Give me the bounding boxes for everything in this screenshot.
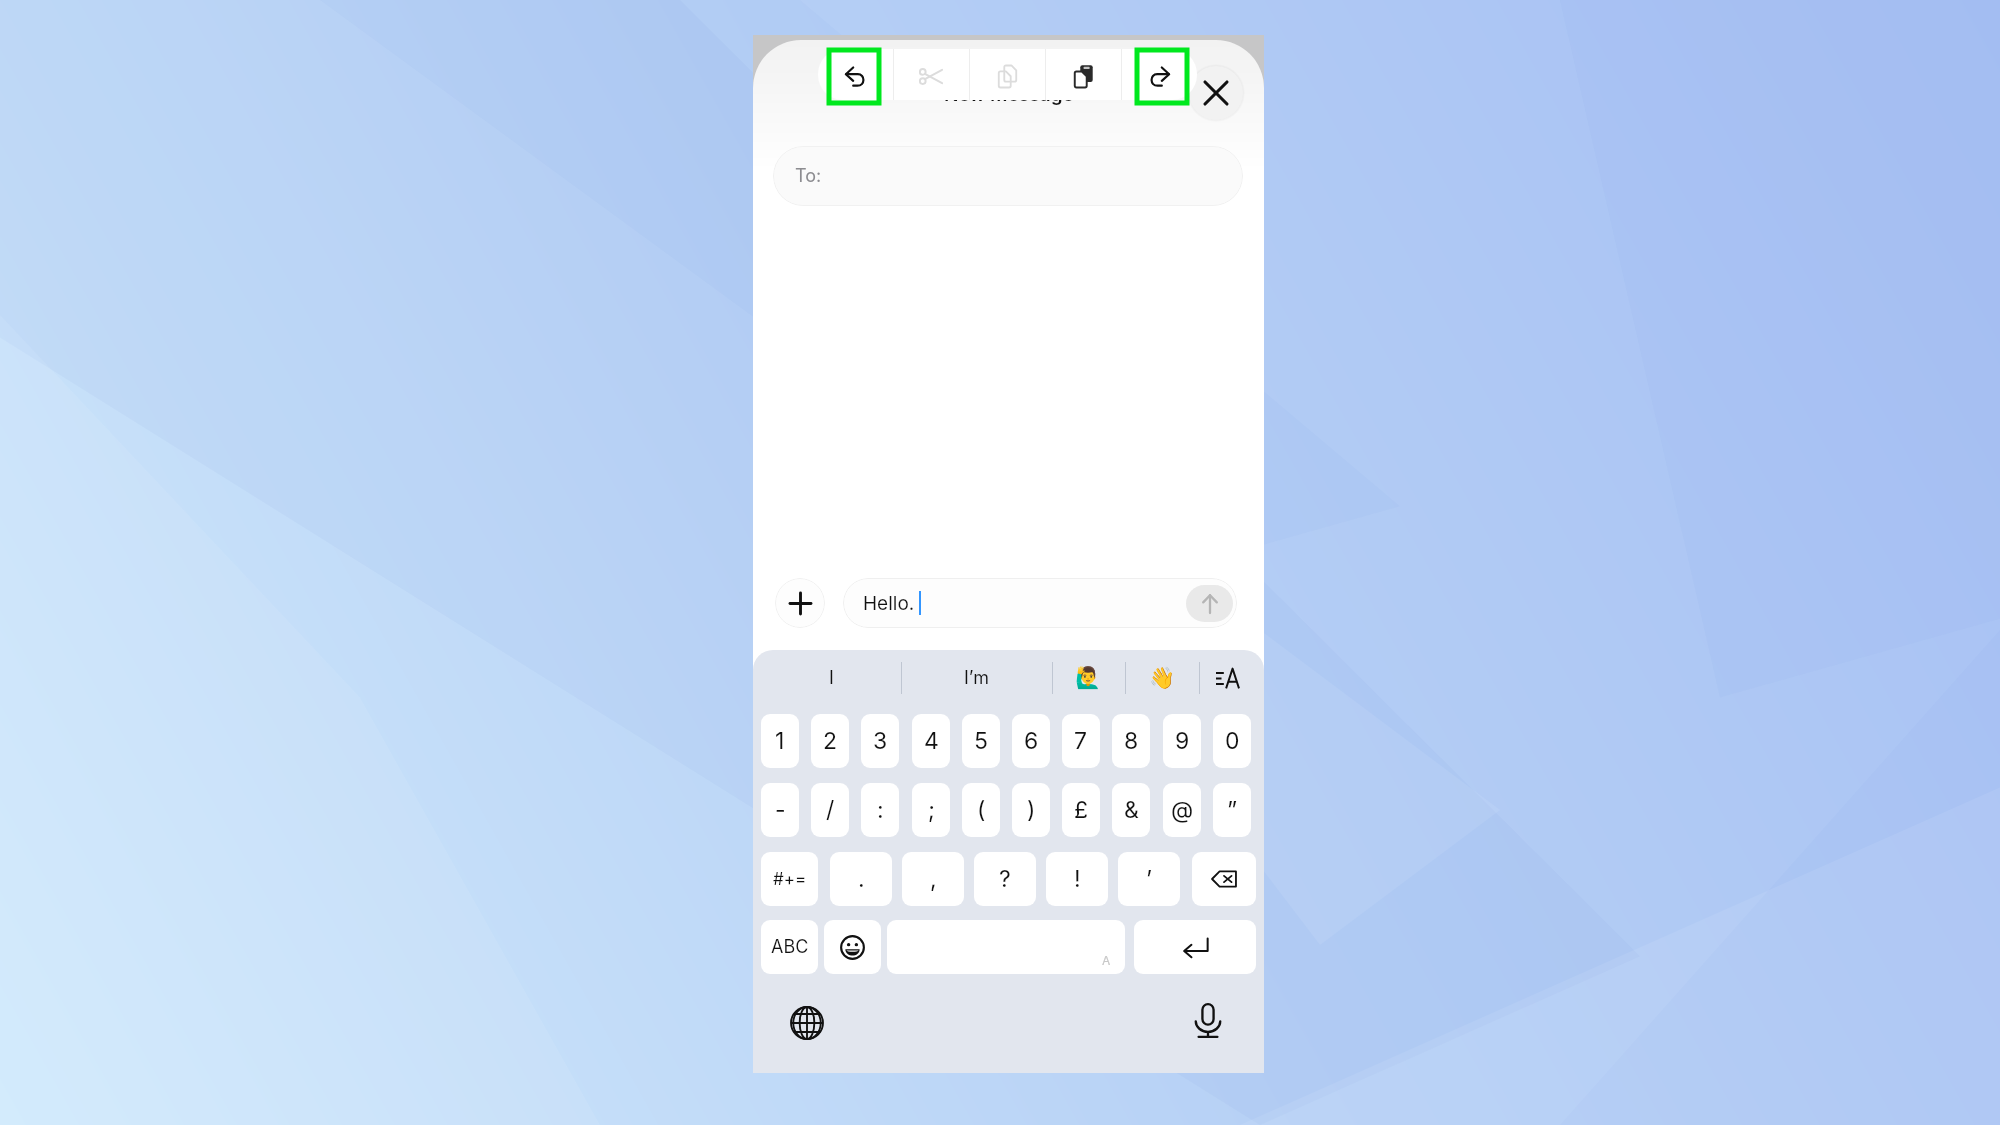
staticText: ABC — [771, 936, 809, 958]
button[interactable]: #+= — [761, 852, 818, 906]
button[interactable]: £ — [1062, 783, 1100, 837]
button[interactable]: Space — [887, 920, 1125, 974]
staticText: 9 — [1175, 727, 1190, 755]
staticText: , — [930, 865, 937, 893]
button[interactable]: Paste — [1046, 49, 1121, 100]
button[interactable]: Copy — [970, 49, 1045, 100]
staticText: ; — [928, 796, 935, 824]
staticText: 8 — [1124, 727, 1139, 755]
button[interactable]: Emoji keyboard — [824, 920, 881, 974]
staticText: 4 — [924, 727, 939, 755]
button[interactable]: / — [811, 783, 849, 837]
button[interactable]: Redo — [1122, 49, 1197, 100]
button[interactable]: 3 — [861, 714, 899, 768]
button[interactable]: Dictate — [1185, 998, 1231, 1044]
staticText: ? — [999, 865, 1011, 893]
staticText: A — [1102, 953, 1111, 968]
staticText: To: — [795, 165, 822, 187]
staticText: 7 — [1074, 727, 1088, 755]
staticText: ( — [977, 796, 986, 824]
button[interactable]: . — [830, 852, 892, 906]
button[interactable]: Add attachment — [775, 578, 825, 628]
button[interactable]: ? — [974, 852, 1036, 906]
staticText: ” — [1227, 796, 1238, 824]
button[interactable]: 1 — [761, 714, 799, 768]
button[interactable]: @ — [1163, 783, 1201, 837]
staticText: I’m — [964, 667, 989, 689]
button[interactable]: Emoji suggestion — [1125, 650, 1199, 706]
button[interactable]: ; — [912, 783, 950, 837]
staticText: I — [829, 667, 834, 689]
button[interactable]: 8 — [1112, 714, 1150, 768]
button[interactable]: : — [861, 783, 899, 837]
staticText: 🙋‍♂️ — [1075, 666, 1102, 691]
staticText: 3 — [873, 727, 888, 755]
button[interactable]: , — [902, 852, 964, 906]
button[interactable]: I’m — [901, 650, 1052, 706]
button[interactable]: ( — [962, 783, 1000, 837]
button[interactable]: 0 — [1213, 714, 1251, 768]
button[interactable]: 2 — [811, 714, 849, 768]
staticText: 👋 — [1149, 666, 1176, 691]
staticText: 0 — [1225, 727, 1240, 755]
staticText: Hello. — [863, 592, 915, 615]
staticText: . — [858, 865, 865, 893]
button[interactable]: Return — [1134, 920, 1256, 974]
button[interactable]: 5 — [962, 714, 1000, 768]
staticText: ’ — [1146, 865, 1152, 893]
button[interactable]: Close — [1189, 66, 1243, 120]
staticText: 1 — [775, 727, 785, 755]
button[interactable]: Change keyboard — [784, 1000, 830, 1046]
button[interactable]: Undo — [818, 49, 893, 100]
button[interactable]: 6 — [1012, 714, 1050, 768]
button[interactable]: ! — [1046, 852, 1108, 906]
staticText: New Message — [944, 83, 1074, 106]
staticText: 5 — [974, 727, 988, 755]
button[interactable]: & — [1112, 783, 1150, 837]
staticText: & — [1124, 796, 1139, 824]
button[interactable]: 7 — [1062, 714, 1100, 768]
button[interactable]: To: — [773, 146, 1243, 206]
staticText: 6 — [1024, 727, 1039, 755]
staticText: : — [877, 796, 884, 824]
staticText: #+= — [773, 869, 807, 890]
staticText: / — [826, 796, 835, 824]
button[interactable]: Text formatting — [1199, 650, 1256, 706]
button[interactable]: Emoji suggestion — [1052, 650, 1125, 706]
staticText: ! — [1074, 865, 1081, 893]
button[interactable]: - — [761, 783, 799, 837]
staticText: 2 — [823, 727, 838, 755]
staticText: @ — [1171, 796, 1194, 824]
button[interactable]: Backspace — [1192, 852, 1256, 906]
staticText: £ — [1074, 796, 1089, 824]
staticText: ) — [1027, 796, 1036, 824]
button[interactable]: Hello. — [843, 578, 1237, 628]
button[interactable]: ’ — [1118, 852, 1180, 906]
button[interactable]: ” — [1213, 783, 1251, 837]
button[interactable]: 4 — [912, 714, 950, 768]
button[interactable]: I — [761, 650, 901, 706]
button[interactable]: ABC — [761, 920, 818, 974]
staticText: - — [775, 796, 786, 824]
button[interactable]: 9 — [1163, 714, 1201, 768]
button[interactable]: Cut — [894, 49, 969, 100]
button[interactable]: Send — [1186, 585, 1233, 622]
button[interactable]: ) — [1012, 783, 1050, 837]
